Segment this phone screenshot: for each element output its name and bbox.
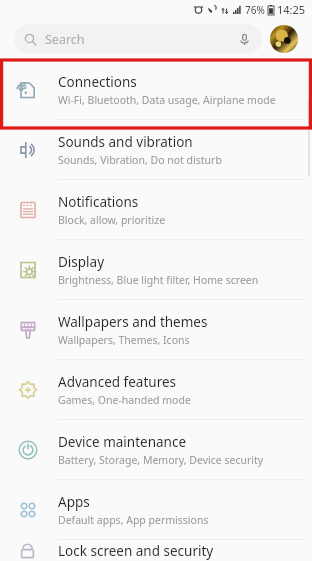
staticText: Block, allow, prioritize	[58, 213, 166, 227]
button[interactable]: Connections	[0, 60, 312, 119]
staticText: Device maintenance	[58, 433, 187, 451]
staticText: Brightness, Blue light filter, Home scre…	[58, 273, 259, 287]
staticText: Apps	[58, 493, 90, 511]
staticText: Connections	[58, 73, 137, 91]
button[interactable]: Wallpapers and themes	[0, 300, 312, 359]
staticText: Display	[58, 253, 105, 271]
staticText: Default apps, App permissions	[58, 513, 209, 527]
staticText: Search	[45, 31, 236, 48]
staticText: Sounds, Vibration, Do not disturb	[58, 153, 222, 167]
button[interactable]: Notifications	[0, 180, 312, 239]
button[interactable]: Display	[0, 240, 312, 299]
staticText: Advanced features	[58, 373, 177, 391]
button[interactable]: Device maintenance	[0, 420, 312, 479]
button[interactable]: Voice search	[236, 31, 252, 47]
staticText: Battery, Storage, Memory, Device securit…	[58, 453, 264, 467]
staticText: Games, One-handed mode	[58, 393, 191, 407]
staticText: 76%	[245, 3, 265, 17]
button[interactable]: Profile	[270, 25, 298, 53]
staticText: Sounds and vibration	[58, 133, 193, 151]
button[interactable]: Search	[14, 24, 262, 54]
staticText: Lock screen and security	[58, 542, 214, 560]
staticText: Wallpapers and themes	[58, 313, 208, 331]
staticText: 14:25	[277, 2, 306, 17]
staticText: Notifications	[58, 193, 139, 211]
button[interactable]: Lock screen and security	[0, 540, 312, 561]
button[interactable]: Apps	[0, 480, 312, 539]
staticText: Wallpapers, Themes, Icons	[58, 333, 190, 347]
button[interactable]: Sounds and vibration	[0, 120, 312, 179]
button[interactable]: Advanced features	[0, 360, 312, 419]
staticText: Wi-Fi, Bluetooth, Data usage, Airplane m…	[58, 93, 276, 107]
